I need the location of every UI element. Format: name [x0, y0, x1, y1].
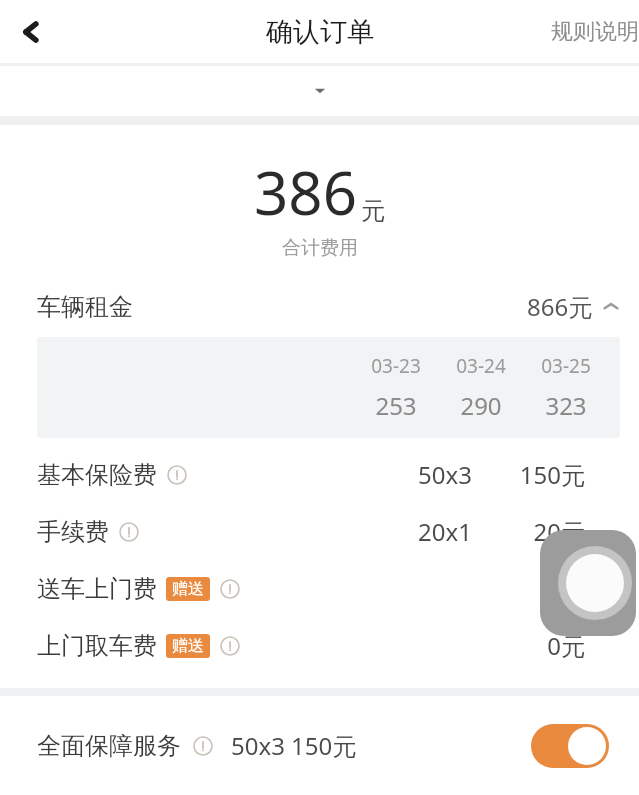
staticText: 规则说明 — [551, 18, 639, 46]
staticText: 20元 — [533, 515, 585, 548]
staticText: 150元 — [519, 458, 585, 491]
button[interactable]: 车辆租金 — [0, 282, 639, 331]
button[interactable]: 基本保险费 — [0, 446, 639, 503]
staticText: 基本保险费 — [37, 460, 157, 490]
staticText: 386 — [254, 151, 357, 233]
button[interactable]: 全面保障服务 — [0, 696, 639, 795]
staticText: 车辆租金 — [37, 292, 133, 322]
staticText: 03-25 — [541, 353, 591, 379]
staticText: 0元 — [547, 629, 585, 662]
button[interactable]: 送车上门费 — [0, 560, 639, 617]
staticText: 赠送 — [172, 579, 204, 599]
button[interactable]: Expand details — [0, 66, 639, 116]
staticText: 03-23 — [371, 353, 421, 379]
staticText: 20x1 — [418, 515, 472, 548]
staticText: 确认订单 — [266, 15, 374, 49]
button[interactable]: 规则说明 — [541, 8, 639, 56]
staticText: 送车上门费 — [37, 574, 157, 604]
button[interactable]: Back — [6, 6, 58, 58]
staticText: 03-24 — [456, 353, 506, 379]
button[interactable]: 手续费 — [0, 503, 639, 560]
staticText: 上门取车费 — [37, 631, 157, 661]
staticText: 合计费用 — [282, 236, 358, 260]
staticText: 50x3 — [418, 458, 472, 491]
button[interactable]: 上门取车费 — [0, 617, 639, 674]
staticText: 290 — [460, 389, 502, 422]
staticText: 手续费 — [37, 517, 109, 547]
staticText: 323 — [545, 389, 587, 422]
staticText: 50x3 150元 — [231, 729, 357, 762]
staticText: 0元 — [547, 572, 585, 605]
staticText: 866元 — [527, 290, 593, 323]
staticText: 元 — [361, 196, 385, 226]
staticText: 253 — [375, 389, 417, 422]
staticText: 全面保障服务 — [37, 731, 181, 761]
staticText: 赠送 — [172, 636, 204, 656]
